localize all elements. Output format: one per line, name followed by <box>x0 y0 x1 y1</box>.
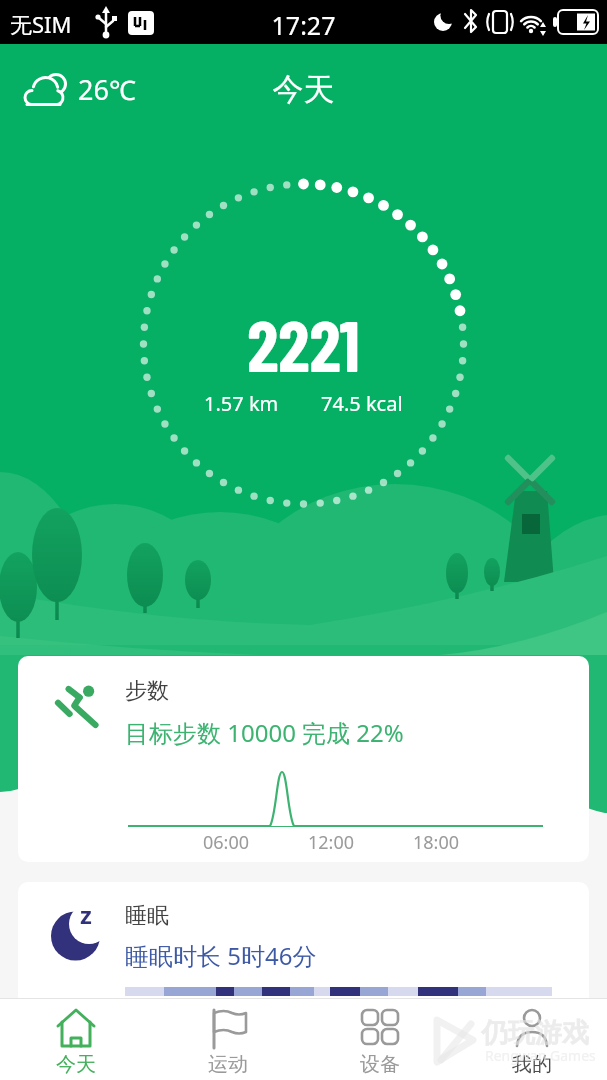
staticText: z <box>80 898 92 931</box>
button[interactable]: 步数 <box>18 656 589 862</box>
staticText: 睡眠时长 5时46分 <box>125 939 317 972</box>
staticText: 18:00 <box>413 830 460 855</box>
staticText: 目标步数 10000 完成 22% <box>125 716 404 749</box>
staticText: 睡眠 <box>125 902 169 930</box>
button[interactable]: z <box>18 882 589 1062</box>
staticText: 26℃ <box>78 71 136 108</box>
staticText: 17:27 <box>0 8 607 42</box>
staticText: 06:00 <box>203 830 250 855</box>
staticText: 今天 <box>26 1052 126 1077</box>
staticText: 设备 <box>330 1052 430 1077</box>
staticText: 运动 <box>178 1052 278 1077</box>
staticText: 步数 <box>125 677 169 705</box>
button[interactable]: 设备 <box>330 1000 430 1080</box>
staticText: Rengwan Games <box>485 1046 596 1065</box>
staticText: 1.57 km <box>204 390 279 417</box>
staticText: 无SIM <box>10 9 72 39</box>
staticText: 仍玩游戏 <box>481 1016 589 1050</box>
button[interactable]: 运动 <box>178 1000 278 1080</box>
staticText: 2221 <box>0 301 607 386</box>
staticText: 今天 <box>0 70 607 109</box>
button[interactable]: 我的 <box>482 1000 582 1080</box>
staticText: 74.5 kcal <box>321 390 403 417</box>
button[interactable]: 今天 <box>26 1000 126 1080</box>
staticText: 我的 <box>482 1052 582 1077</box>
staticText: 12:00 <box>308 830 355 855</box>
